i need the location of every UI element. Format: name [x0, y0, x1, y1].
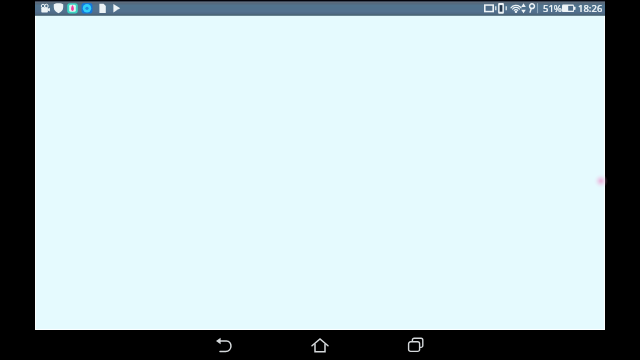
button[interactable]: Recent apps	[384, 330, 448, 360]
staticText: 51%	[543, 2, 562, 15]
button[interactable]: Home	[288, 330, 352, 360]
button[interactable]: Shortcut	[594, 171, 608, 191]
staticText: 18:26	[578, 2, 603, 15]
button[interactable]: Back	[192, 330, 256, 360]
